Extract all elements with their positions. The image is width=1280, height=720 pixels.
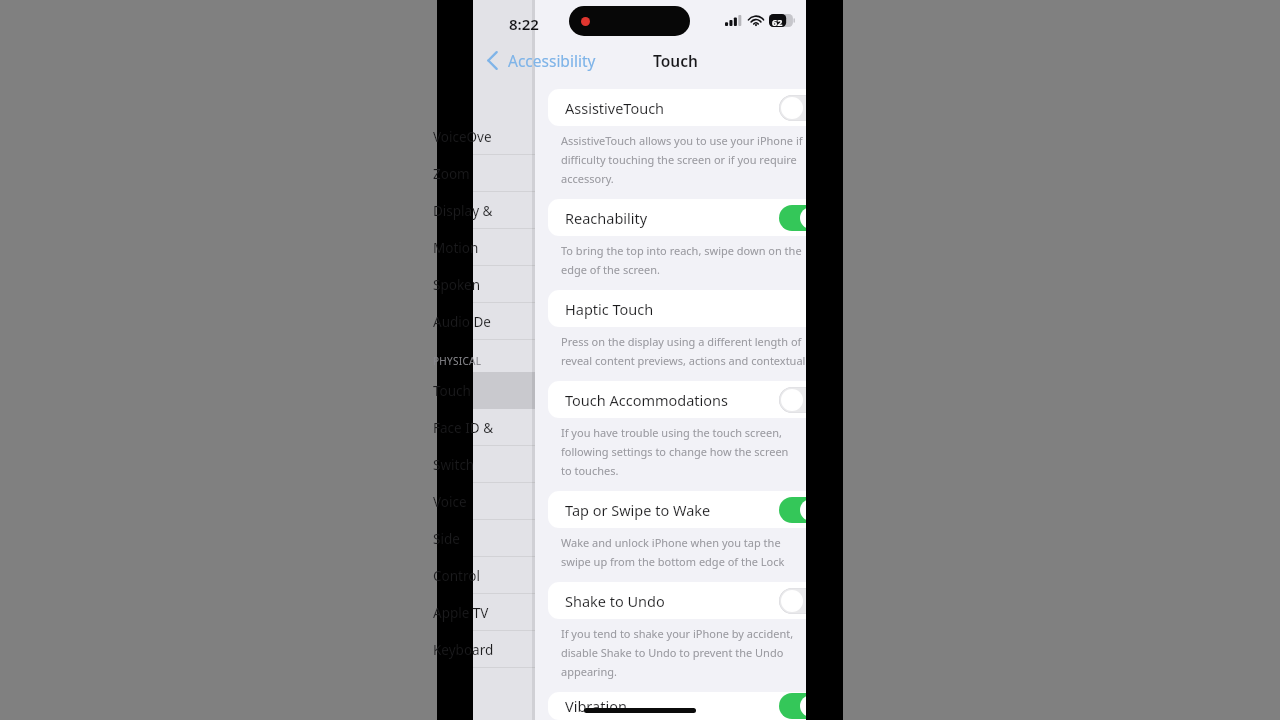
button[interactable]: Display & Text Size <box>473 192 535 229</box>
button[interactable]: Tap or Swipe to Wake <box>548 491 806 528</box>
button[interactable]: Haptic Touch <box>548 290 806 327</box>
button[interactable]: Touch <box>473 372 535 409</box>
staticText: Press on the display using a different l… <box>561 334 806 349</box>
staticText: Apple TV Remote <box>433 604 495 622</box>
staticText: PHYSICAL AND MOTOR <box>433 354 495 368</box>
button[interactable]: Toggle on <box>779 693 806 719</box>
staticText: reveal content previews, actions and con… <box>561 353 806 368</box>
staticText: 8:22 <box>509 14 539 34</box>
staticText: disable Shake to Undo to prevent the Und… <box>561 645 806 660</box>
button[interactable]: Touch Accommodations <box>548 381 806 418</box>
button[interactable]: Face ID & Attention <box>473 409 535 446</box>
staticText: 62 <box>772 16 783 28</box>
staticText: Audio Descriptions <box>433 313 495 331</box>
staticText: to touches. <box>561 463 619 478</box>
staticText: If you tend to shake your iPhone by acci… <box>561 626 806 641</box>
button[interactable]: Side Button <box>473 520 535 557</box>
staticText: Touch Accommodations <box>565 390 729 410</box>
staticText: Touch <box>653 50 698 71</box>
staticText: AssistiveTouch <box>565 98 665 118</box>
button[interactable]: Toggle off <box>779 95 806 121</box>
staticText: AssistiveTouch allows you to use your iP… <box>561 133 806 148</box>
button[interactable]: Keyboards <box>473 631 535 668</box>
staticText: Accessibility <box>508 50 596 71</box>
button[interactable]: Shake to Undo <box>548 582 806 619</box>
button[interactable]: Reachability <box>548 199 806 236</box>
button[interactable]: Toggle off <box>779 588 806 614</box>
staticText: Tap or Swipe to Wake <box>565 500 711 520</box>
button[interactable]: Voice Control <box>473 483 535 520</box>
staticText: VoiceOver <box>433 128 495 146</box>
button[interactable]: Motion <box>473 229 535 266</box>
button[interactable]: Toggle on <box>779 205 806 231</box>
staticText: Vibration <box>565 696 627 716</box>
staticText: Shake to Undo <box>565 591 665 611</box>
button[interactable]: Toggle on <box>779 497 806 523</box>
staticText: appearing. <box>561 664 617 679</box>
staticText: Switch Control <box>433 456 495 474</box>
button[interactable]: Control Nearby Devices <box>473 557 535 594</box>
button[interactable]: Apple TV Remote <box>473 594 535 631</box>
button[interactable]: VoiceOver <box>473 118 535 155</box>
staticText: Display & Text Size <box>433 202 495 220</box>
button[interactable]: AssistiveTouch <box>548 89 806 126</box>
staticText: Spoken Content <box>433 276 495 294</box>
staticText: Side Button <box>433 530 495 548</box>
staticText: difficulty touching the screen or if you… <box>561 152 806 167</box>
staticText: following settings to change how the scr… <box>561 444 806 459</box>
staticText: Voice Control <box>433 493 495 511</box>
staticText: Touch <box>433 382 495 400</box>
staticText: If you have trouble using the touch scre… <box>561 425 806 440</box>
staticText: Face ID & Attention <box>433 419 495 437</box>
staticText: Control Nearby Devices <box>433 567 495 585</box>
button[interactable]: Toggle off <box>779 387 806 413</box>
staticText: edge of the screen. <box>561 262 660 277</box>
staticText: swipe up from the bottom edge of the Loc… <box>561 554 806 569</box>
button[interactable]: Vibration <box>548 692 806 720</box>
button[interactable]: Zoom <box>473 155 535 192</box>
staticText: Keyboards <box>433 641 495 659</box>
staticText: Wake and unlock iPhone when you tap the … <box>561 535 806 550</box>
button[interactable]: Audio Descriptions <box>473 303 535 340</box>
button[interactable]: Spoken Content <box>473 266 535 303</box>
staticText: Zoom <box>433 165 495 183</box>
staticText: Reachability <box>565 208 648 228</box>
staticText: accessory. <box>561 171 614 186</box>
staticText: To bring the top into reach, swipe down … <box>561 243 806 258</box>
button[interactable]: Back to Accessibility <box>487 40 596 80</box>
button[interactable]: Switch Control <box>473 446 535 483</box>
staticText: Motion <box>433 239 495 257</box>
staticText: Haptic Touch <box>565 299 654 319</box>
